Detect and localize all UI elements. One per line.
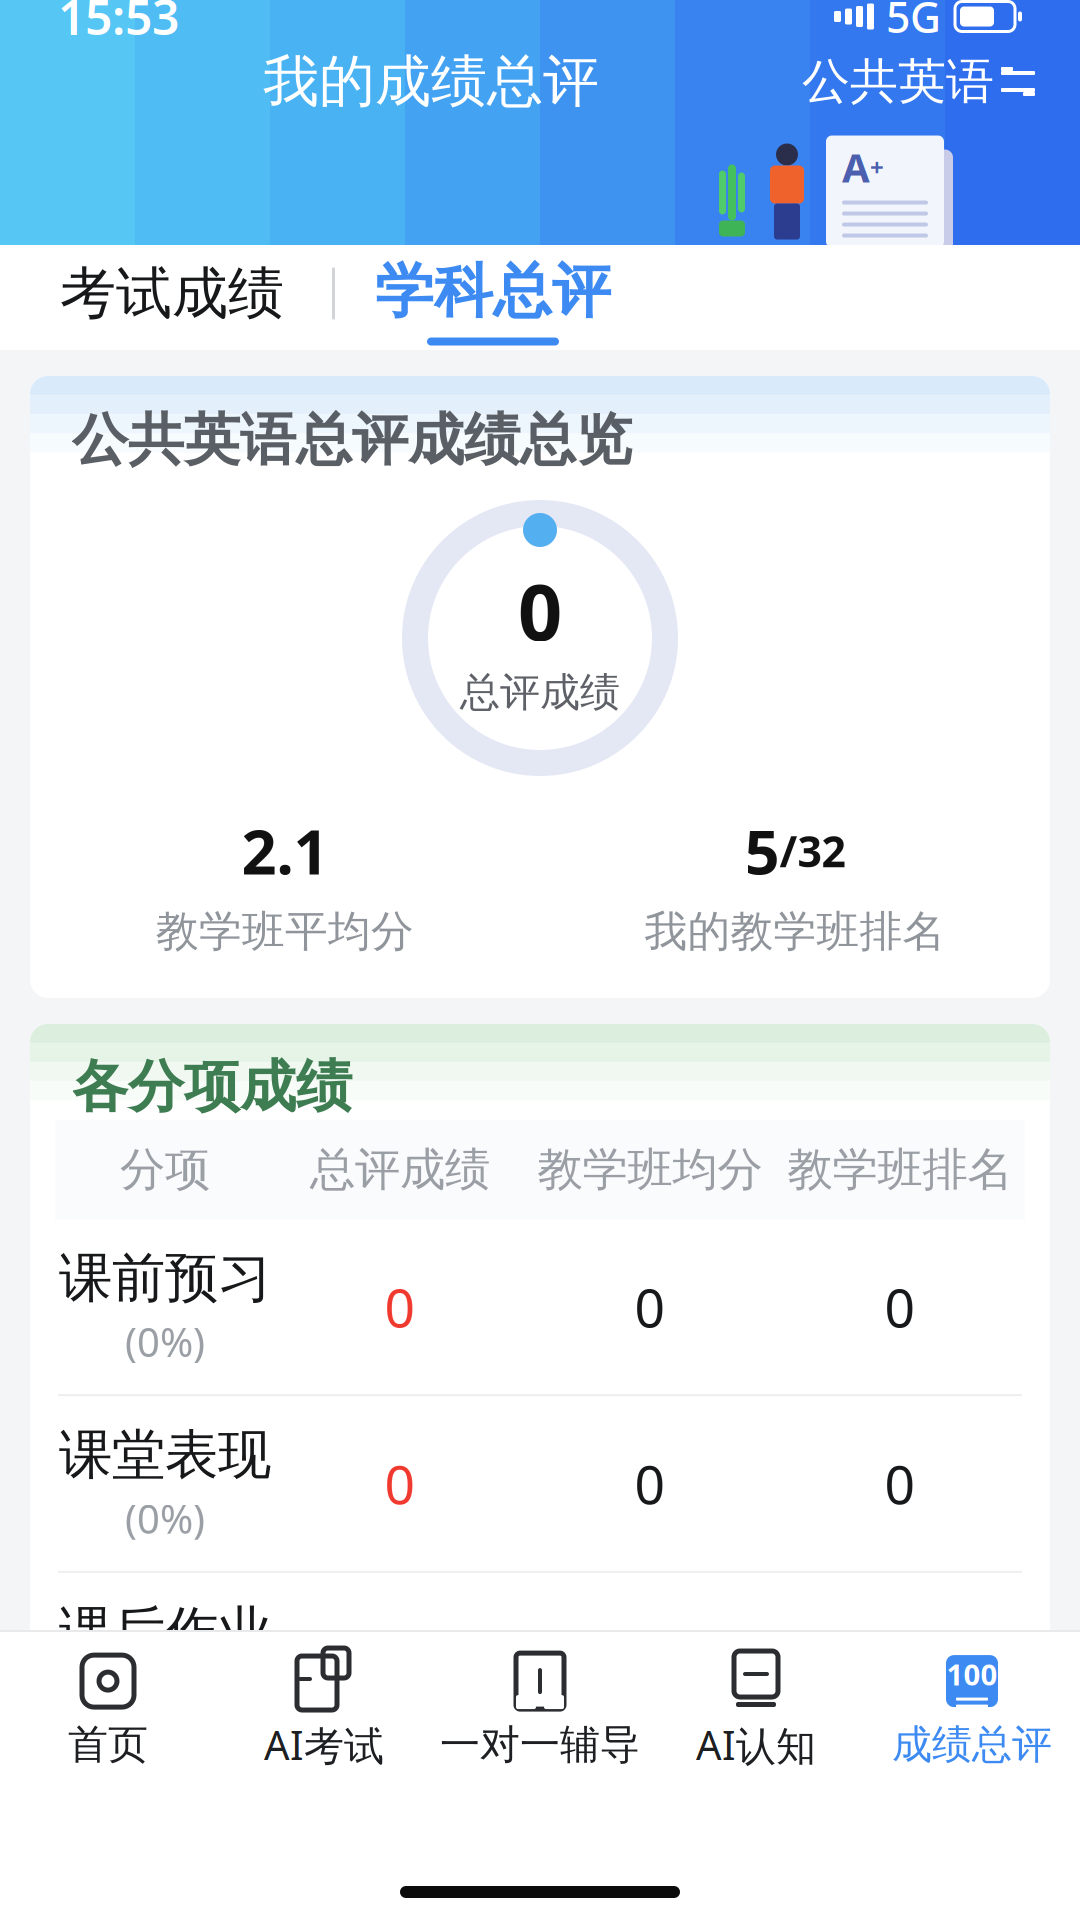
staticText: 0 — [884, 1271, 915, 1342]
staticText: 各分项成绩 — [72, 1052, 352, 1121]
button[interactable]: 首页 — [0, 1634, 216, 1779]
staticText: (0%) — [125, 1315, 205, 1368]
button[interactable]: 100 — [864, 1634, 1080, 1779]
staticText: 公共英语 — [802, 52, 994, 111]
staticText: 考试成绩 — [60, 259, 284, 328]
button[interactable]: AI考试 — [216, 1632, 432, 1781]
staticText: 2.1 — [241, 810, 328, 891]
staticText: 公共英语总评成绩总览 — [72, 406, 632, 474]
staticText: 15:53 — [58, 0, 179, 48]
button[interactable]: 考试成绩 — [52, 245, 292, 342]
staticText: 0 — [518, 559, 562, 662]
staticText: 课后作业 — [59, 1599, 271, 1664]
staticText: (0%) — [125, 1492, 205, 1545]
staticText: 0 — [634, 1625, 665, 1695]
staticText: 分项 — [120, 1142, 210, 1198]
staticText: 课前预习 — [59, 1245, 271, 1311]
button[interactable]: 公共英语 — [802, 52, 1036, 111]
staticText: 我的教学班排名 — [644, 905, 945, 958]
button[interactable]: 学科总评 — [375, 241, 611, 346]
staticText: 0 — [884, 1448, 915, 1519]
staticText: 课堂表现 — [59, 1422, 271, 1488]
staticText: 首页 — [68, 1720, 148, 1769]
button[interactable]: AI认知 — [648, 1632, 864, 1781]
staticText: AI考试 — [264, 1718, 384, 1771]
staticText: /32 — [779, 822, 845, 879]
staticText: 教学班排名 — [787, 1142, 1012, 1198]
staticText: 教学班均分 — [537, 1142, 762, 1198]
staticText: 总评成绩 — [310, 1142, 490, 1198]
staticText: 0 — [384, 1448, 415, 1519]
staticText: 教学班平均分 — [156, 905, 414, 958]
staticText: 5 — [744, 810, 779, 891]
staticText: 0 — [634, 1448, 665, 1519]
staticText: (0%) — [125, 1668, 205, 1721]
staticText: 0 — [384, 1625, 415, 1695]
staticText: 我的成绩总评 — [263, 47, 599, 116]
staticText: A — [842, 140, 870, 193]
button[interactable]: 一对一辅导 — [432, 1634, 648, 1779]
staticText: 一对一辅导 — [440, 1720, 640, 1769]
staticText: 100 — [946, 1655, 997, 1694]
staticText: 学科总评 — [375, 255, 611, 328]
staticText: 0 — [634, 1271, 665, 1342]
staticText: + — [870, 151, 884, 183]
staticText: 总评成绩 — [460, 668, 620, 717]
staticText: 5G — [886, 0, 941, 45]
staticText: 0 — [384, 1271, 415, 1342]
staticText: 成绩总评 — [892, 1720, 1052, 1769]
staticText: 0 — [884, 1625, 915, 1695]
staticText: AI认知 — [696, 1718, 816, 1771]
